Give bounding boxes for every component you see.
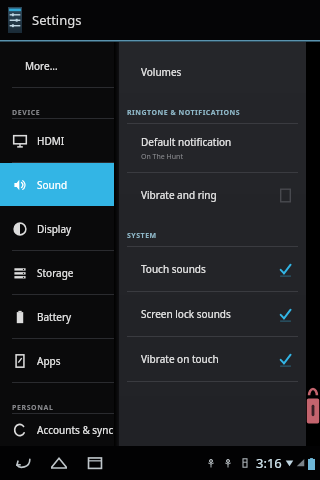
staticText: Touch sounds (141, 262, 206, 276)
staticText: Volumes (141, 65, 182, 79)
button[interactable]: Screen lock sounds (119, 292, 306, 336)
button[interactable]: Recent apps (84, 452, 106, 474)
staticText: PERSONAL (12, 403, 54, 413)
staticText: DEVICE (12, 108, 41, 118)
button[interactable]: Sound (0, 163, 114, 206)
staticText: Vibrate and ring (141, 188, 217, 202)
button[interactable]: Apps (0, 339, 114, 382)
staticText: Sound (37, 178, 68, 192)
button[interactable]: Back (12, 452, 34, 474)
staticText: Storage (37, 266, 74, 280)
staticText: Settings (32, 11, 82, 29)
staticText: More... (25, 59, 58, 73)
staticText: RINGTONE & NOTIFICATIONS (127, 108, 241, 118)
button[interactable]: Display (0, 207, 114, 250)
button[interactable]: Home (48, 452, 70, 474)
staticText: On The Hunt (141, 152, 183, 162)
staticText: HDMI (37, 134, 65, 148)
staticText: Battery (37, 310, 72, 324)
button[interactable]: Checked (276, 260, 294, 278)
button[interactable]: More... (0, 44, 114, 87)
button[interactable]: Storage (0, 251, 114, 294)
staticText: Display (37, 222, 72, 236)
button[interactable]: Settings app icon (8, 7, 22, 33)
button[interactable]: Status icons (205, 454, 315, 472)
staticText: SYSTEM (127, 231, 157, 241)
button[interactable]: Unchecked (276, 186, 294, 204)
button[interactable]: Volumes (119, 50, 306, 94)
button[interactable]: Checked (276, 350, 294, 368)
staticText: Default notification (141, 135, 232, 149)
button[interactable]: Battery (0, 295, 114, 338)
button[interactable]: Checked (276, 305, 294, 323)
staticText: Accounts & sync (37, 423, 114, 437)
button[interactable]: Screen lock (306, 387, 320, 425)
staticText: Apps (37, 354, 61, 368)
button[interactable]: Default notification (119, 124, 306, 172)
button[interactable]: HDMI (0, 119, 114, 162)
staticText: Vibrate on touch (141, 352, 219, 366)
staticText: 3:16 (256, 454, 282, 472)
button[interactable]: Vibrate and ring (119, 173, 306, 217)
button[interactable]: Vibrate on touch (119, 337, 306, 381)
staticText: Screen lock sounds (141, 307, 231, 321)
button[interactable]: Touch sounds (119, 247, 306, 291)
button[interactable]: Accounts & sync (0, 414, 114, 446)
